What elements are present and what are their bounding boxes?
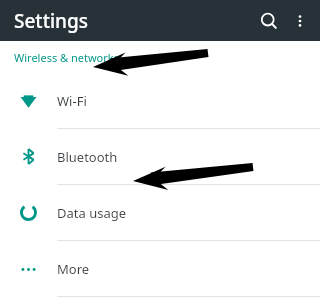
button[interactable]: More	[0, 241, 320, 296]
staticText: More	[57, 260, 90, 278]
staticText: Bluetooth	[57, 148, 118, 166]
button[interactable]: Wi-Fi	[0, 73, 320, 128]
button[interactable]: More options	[286, 7, 314, 35]
staticText: Data usage	[57, 204, 127, 222]
button[interactable]: Bluetooth	[0, 129, 320, 184]
button[interactable]: Data usage	[0, 185, 320, 240]
staticText: Wireless & networks	[14, 50, 119, 65]
staticText: Settings	[14, 8, 88, 34]
staticText: Wi-Fi	[57, 92, 87, 110]
button[interactable]: Search	[254, 6, 284, 36]
